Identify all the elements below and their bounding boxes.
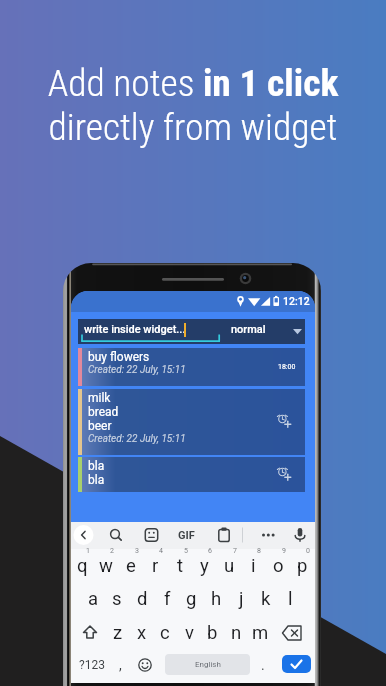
button[interactable]: b: [200, 617, 224, 649]
staticText: l: [288, 588, 293, 610]
staticText: normal: [231, 323, 266, 336]
staticText: buy flowers: [88, 350, 150, 364]
staticText: q: [77, 555, 88, 577]
button[interactable]: i: [241, 550, 265, 582]
staticText: 18:00: [278, 363, 296, 371]
button[interactable]: Backspace: [281, 622, 305, 644]
staticText: GIF: [178, 529, 195, 542]
staticText: beer: [88, 419, 112, 433]
staticText: f: [164, 588, 171, 610]
staticText: 7: [233, 547, 237, 555]
button[interactable]: s: [105, 583, 129, 615]
staticText: t: [177, 555, 184, 577]
button[interactable]: t: [168, 550, 192, 582]
staticText: 5: [184, 547, 188, 555]
button[interactable]: .: [252, 653, 274, 677]
staticText: 9: [282, 547, 286, 555]
staticText: 2: [110, 547, 114, 555]
staticText: o: [273, 555, 284, 577]
button[interactable]: r: [143, 550, 167, 582]
button[interactable]: Shift: [78, 621, 102, 645]
staticText: 3: [135, 547, 139, 555]
button[interactable]: j: [229, 583, 253, 615]
staticText: bla: [88, 459, 105, 473]
staticText: s: [112, 588, 122, 610]
button[interactable]: w: [94, 550, 118, 582]
staticText: Add notes in 1 click directly from widge…: [0, 61, 386, 149]
button[interactable]: d: [130, 583, 154, 615]
staticText: g: [186, 588, 197, 610]
staticText: 4: [159, 547, 163, 555]
staticText: .: [261, 657, 265, 673]
button[interactable]: buy flowers: [78, 348, 305, 386]
staticText: 12:12: [283, 295, 310, 307]
staticText: ,: [119, 657, 122, 673]
staticText: 8: [257, 547, 261, 555]
staticText: y: [200, 555, 209, 577]
button[interactable]: l: [278, 583, 302, 615]
button[interactable]: English: [165, 654, 250, 675]
button[interactable]: g: [179, 583, 203, 615]
staticText: k: [261, 588, 271, 610]
staticText: m: [252, 622, 269, 644]
button[interactable]: v: [177, 617, 201, 649]
button[interactable]: c: [153, 617, 177, 649]
button[interactable]: o: [266, 550, 290, 582]
button[interactable]: Emoji: [133, 653, 157, 677]
button[interactable]: u: [217, 550, 241, 582]
staticText: u: [224, 555, 235, 577]
button[interactable]: e: [119, 550, 143, 582]
staticText: i: [251, 555, 256, 577]
button[interactable]: f: [155, 583, 179, 615]
button[interactable]: h: [204, 583, 228, 615]
button[interactable]: ?123: [75, 653, 109, 677]
button[interactable]: y: [192, 550, 216, 582]
staticText: Created: 22 July, 15:11: [88, 364, 186, 376]
staticText: d: [137, 588, 148, 610]
button[interactable]: x: [130, 617, 154, 649]
staticText: Created: 22 July, 15:11: [88, 433, 186, 445]
staticText: ?123: [79, 658, 105, 672]
staticText: a: [88, 588, 99, 610]
staticText: c: [160, 622, 170, 644]
staticText: v: [185, 622, 194, 644]
staticText: h: [211, 588, 222, 610]
other: Add alarm: [276, 412, 296, 432]
staticText: 6: [208, 547, 212, 555]
button[interactable]: n: [224, 617, 248, 649]
button[interactable]: write inside widget...: [78, 319, 305, 344]
button[interactable]: ,: [109, 653, 131, 677]
staticText: z: [113, 622, 123, 644]
button[interactable]: k: [254, 583, 278, 615]
staticText: b: [207, 622, 218, 644]
staticText: p: [297, 555, 308, 577]
staticText: j: [239, 588, 244, 610]
button[interactable]: q: [71, 550, 94, 582]
staticText: milk: [88, 391, 111, 405]
button[interactable]: Enter: [282, 655, 311, 673]
button[interactable]: z: [106, 617, 130, 649]
staticText: 1: [86, 547, 90, 555]
staticText: English: [195, 660, 221, 669]
staticText: write inside widget...: [84, 323, 186, 336]
staticText: r: [152, 555, 159, 577]
button[interactable]: a: [81, 583, 105, 615]
button[interactable]: m: [248, 617, 272, 649]
staticText: w: [99, 555, 113, 577]
staticText: 0: [306, 547, 310, 555]
staticText: n: [231, 622, 242, 644]
staticText: x: [137, 622, 147, 644]
button[interactable]: p: [290, 550, 314, 582]
other: Add alarm: [276, 465, 296, 485]
button[interactable]: milk: [78, 389, 305, 455]
staticText: bla: [88, 473, 105, 487]
staticText: bread: [88, 405, 119, 419]
staticText: e: [126, 555, 136, 577]
button[interactable]: bla: [78, 457, 305, 492]
